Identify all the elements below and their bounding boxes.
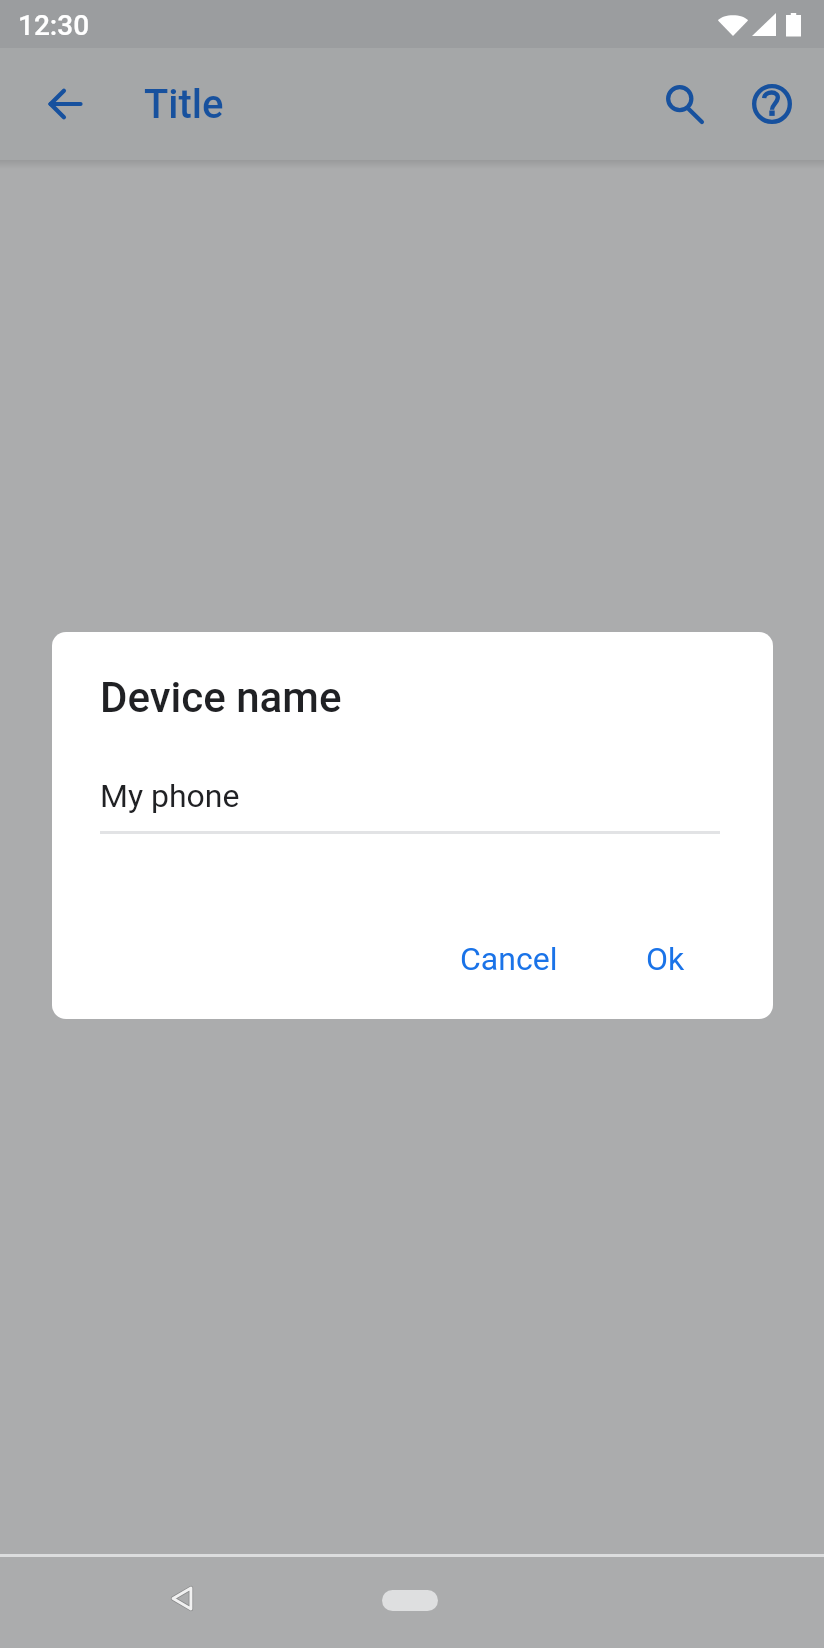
button[interactable]: Search: [628, 56, 724, 152]
staticText: Title: [144, 81, 224, 128]
button[interactable]: Home: [370, 1568, 450, 1632]
button[interactable]: Back: [150, 1566, 214, 1630]
button[interactable]: Device name text field: [100, 764, 720, 834]
staticText: Ok: [646, 940, 685, 978]
staticText: My phone: [100, 777, 240, 815]
button[interactable]: Ok: [630, 926, 701, 992]
staticText: Cancel: [460, 940, 558, 978]
staticText: 12:30: [18, 9, 90, 42]
button[interactable]: Navigate up: [16, 56, 112, 152]
button[interactable]: Help: [724, 56, 820, 152]
staticText: Device name: [100, 673, 342, 722]
button[interactable]: Cancel: [444, 926, 574, 992]
